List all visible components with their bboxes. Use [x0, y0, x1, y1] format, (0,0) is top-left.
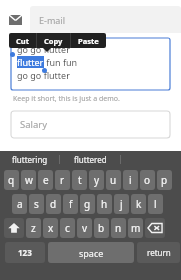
- staticText: f: [69, 197, 73, 211]
- staticText: a: [17, 197, 23, 211]
- button[interactable]: b: [94, 218, 109, 238]
- button[interactable]: f: [63, 194, 78, 214]
- button[interactable]: q: [4, 170, 19, 190]
- staticText: v: [82, 221, 88, 235]
- button[interactable]: Email: [7, 12, 23, 28]
- staticText: o: [144, 173, 151, 187]
- staticText: E-mail: [39, 14, 66, 26]
- staticText: i: [129, 173, 132, 187]
- staticText: s: [34, 197, 39, 211]
- button[interactable]: s: [29, 194, 44, 214]
- button[interactable]: Cut: [9, 33, 36, 48]
- button[interactable]: E-mail: [30, 6, 181, 33]
- button[interactable]: y: [89, 170, 104, 190]
- button[interactable]: g: [80, 194, 95, 214]
- staticText: Paste: [78, 36, 99, 46]
- button[interactable]: l: [148, 194, 163, 214]
- staticText: return: [147, 247, 171, 258]
- staticText: space: [79, 247, 104, 259]
- staticText: fluttering: [12, 154, 48, 165]
- button[interactable]: h: [97, 194, 112, 214]
- button[interactable]: m: [128, 218, 143, 238]
- button[interactable]: d: [46, 194, 61, 214]
- button[interactable]: a: [12, 194, 27, 214]
- button[interactable]: o: [140, 170, 155, 190]
- staticText: b: [98, 221, 105, 235]
- button[interactable]: space: [48, 242, 134, 263]
- button[interactable]: u: [106, 170, 121, 190]
- staticText: flutter: [17, 56, 44, 68]
- staticText: go go flutter: [17, 69, 70, 81]
- button[interactable]: p: [157, 170, 172, 190]
- staticText: h: [101, 197, 108, 211]
- staticText: u: [110, 173, 117, 187]
- staticText: n: [115, 221, 122, 235]
- staticText: g: [84, 197, 91, 211]
- staticText: c: [65, 221, 70, 235]
- staticText: Copy: [44, 36, 63, 46]
- staticText: y: [94, 173, 100, 187]
- staticText: 123: [18, 247, 32, 258]
- button[interactable]: v: [77, 218, 92, 238]
- button[interactable]: 123: [5, 242, 45, 263]
- staticText: l: [154, 197, 157, 211]
- staticText: z: [31, 221, 36, 235]
- staticText: p: [161, 173, 168, 187]
- staticText: e: [43, 173, 49, 187]
- button[interactable]: r: [55, 170, 70, 190]
- staticText: t: [78, 173, 82, 187]
- staticText: r: [60, 173, 65, 187]
- staticText: go go flutter: [17, 43, 70, 55]
- button[interactable]: Salary: [11, 111, 170, 138]
- staticText: w: [25, 173, 33, 187]
- button[interactable]: Copy: [37, 33, 70, 48]
- button[interactable]: k: [131, 194, 146, 214]
- button[interactable]: c: [60, 218, 75, 238]
- staticText: k: [136, 197, 142, 211]
- button[interactable]: fluttering: [0, 151, 59, 168]
- staticText: Cut: [16, 36, 29, 46]
- button[interactable]: z: [26, 218, 41, 238]
- button[interactable]: j: [114, 194, 129, 214]
- staticText: fluttered: [74, 154, 107, 165]
- staticText: j: [120, 197, 123, 211]
- button[interactable]: fluttered: [60, 151, 120, 168]
- staticText: d: [50, 197, 57, 211]
- staticText: x: [48, 221, 54, 235]
- button[interactable]: Shift: [4, 218, 24, 238]
- button[interactable]: Paste: [71, 33, 106, 48]
- button[interactable]: t: [72, 170, 87, 190]
- staticText: Keep it short, this is just a demo.: [13, 94, 120, 104]
- staticText: m: [131, 221, 141, 235]
- button[interactable]: n: [111, 218, 126, 238]
- staticText: fun fun: [44, 56, 78, 68]
- button[interactable]: x: [43, 218, 58, 238]
- button[interactable]: return: [137, 242, 180, 263]
- button[interactable]: Backspace: [145, 218, 165, 238]
- button[interactable]: e: [38, 170, 53, 190]
- staticText: Salary: [20, 118, 48, 131]
- button[interactable]: go go flutter: [11, 38, 170, 90]
- button[interactable]: i: [123, 170, 138, 190]
- button[interactable]: w: [21, 170, 36, 190]
- staticText: q: [8, 173, 15, 187]
